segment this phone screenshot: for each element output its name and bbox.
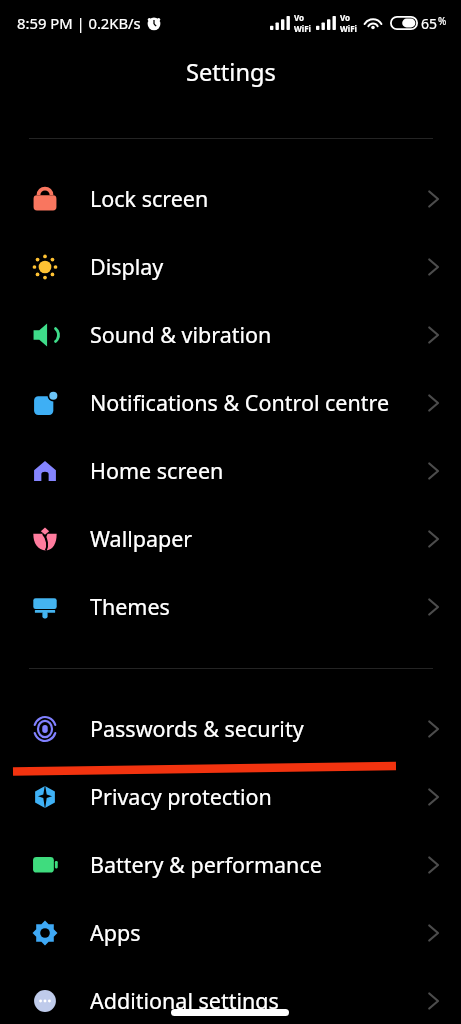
button[interactable]: Notifications & Control centre — [0, 369, 461, 437]
staticText: Battery & performance — [90, 850, 322, 879]
button[interactable]: Apps — [0, 899, 461, 967]
other: Open Privacy protection — [424, 784, 450, 810]
staticText: Additional settings — [90, 986, 279, 1015]
other: Open Sound & vibration — [424, 322, 450, 348]
staticText: Lock screen — [90, 184, 209, 213]
other: Open Notifications & Control centre — [424, 390, 450, 416]
staticText: 8:59 PM | 0.2KB/s — [17, 13, 141, 33]
button[interactable]: Passwords & security — [0, 695, 461, 763]
staticText: Home screen — [90, 456, 224, 485]
staticText: Passwords & security — [90, 714, 304, 743]
staticText: Vo — [294, 12, 305, 23]
staticText: Privacy protection — [90, 782, 272, 811]
other: Open Passwords & security — [424, 716, 450, 742]
button[interactable]: Themes — [0, 573, 461, 641]
staticText: Wallpaper — [90, 524, 193, 553]
button[interactable]: Privacy protection — [0, 763, 461, 831]
button[interactable]: Additional settings — [0, 967, 461, 1024]
other: Open Themes — [424, 594, 450, 620]
staticText: 65 — [421, 14, 438, 33]
button[interactable]: Home screen — [0, 437, 461, 505]
staticText: Notifications & Control centre — [90, 388, 390, 417]
staticText: Apps — [90, 918, 141, 947]
staticText: Vo — [340, 12, 351, 23]
staticText: Themes — [90, 592, 170, 621]
staticText: Sound & vibration — [90, 320, 272, 349]
staticText: Settings — [186, 56, 276, 88]
other: Open Apps — [424, 920, 450, 946]
button[interactable]: Lock screen — [0, 165, 461, 233]
button[interactable]: Wallpaper — [0, 505, 461, 573]
other: Open Battery & performance — [424, 852, 450, 878]
staticText: WiFi — [340, 23, 357, 34]
other: Open Wallpaper — [424, 526, 450, 552]
button[interactable]: Battery & performance — [0, 831, 461, 899]
button[interactable]: Display — [0, 233, 461, 301]
other: Open Additional settings — [424, 988, 450, 1014]
button[interactable]: Sound & vibration — [0, 301, 461, 369]
staticText: WiFi — [294, 23, 311, 34]
other: Open Lock screen — [424, 186, 450, 212]
other: Open Display — [424, 254, 450, 280]
staticText: % — [438, 14, 447, 28]
staticText: Display — [90, 252, 164, 281]
other: Open Home screen — [424, 458, 450, 484]
